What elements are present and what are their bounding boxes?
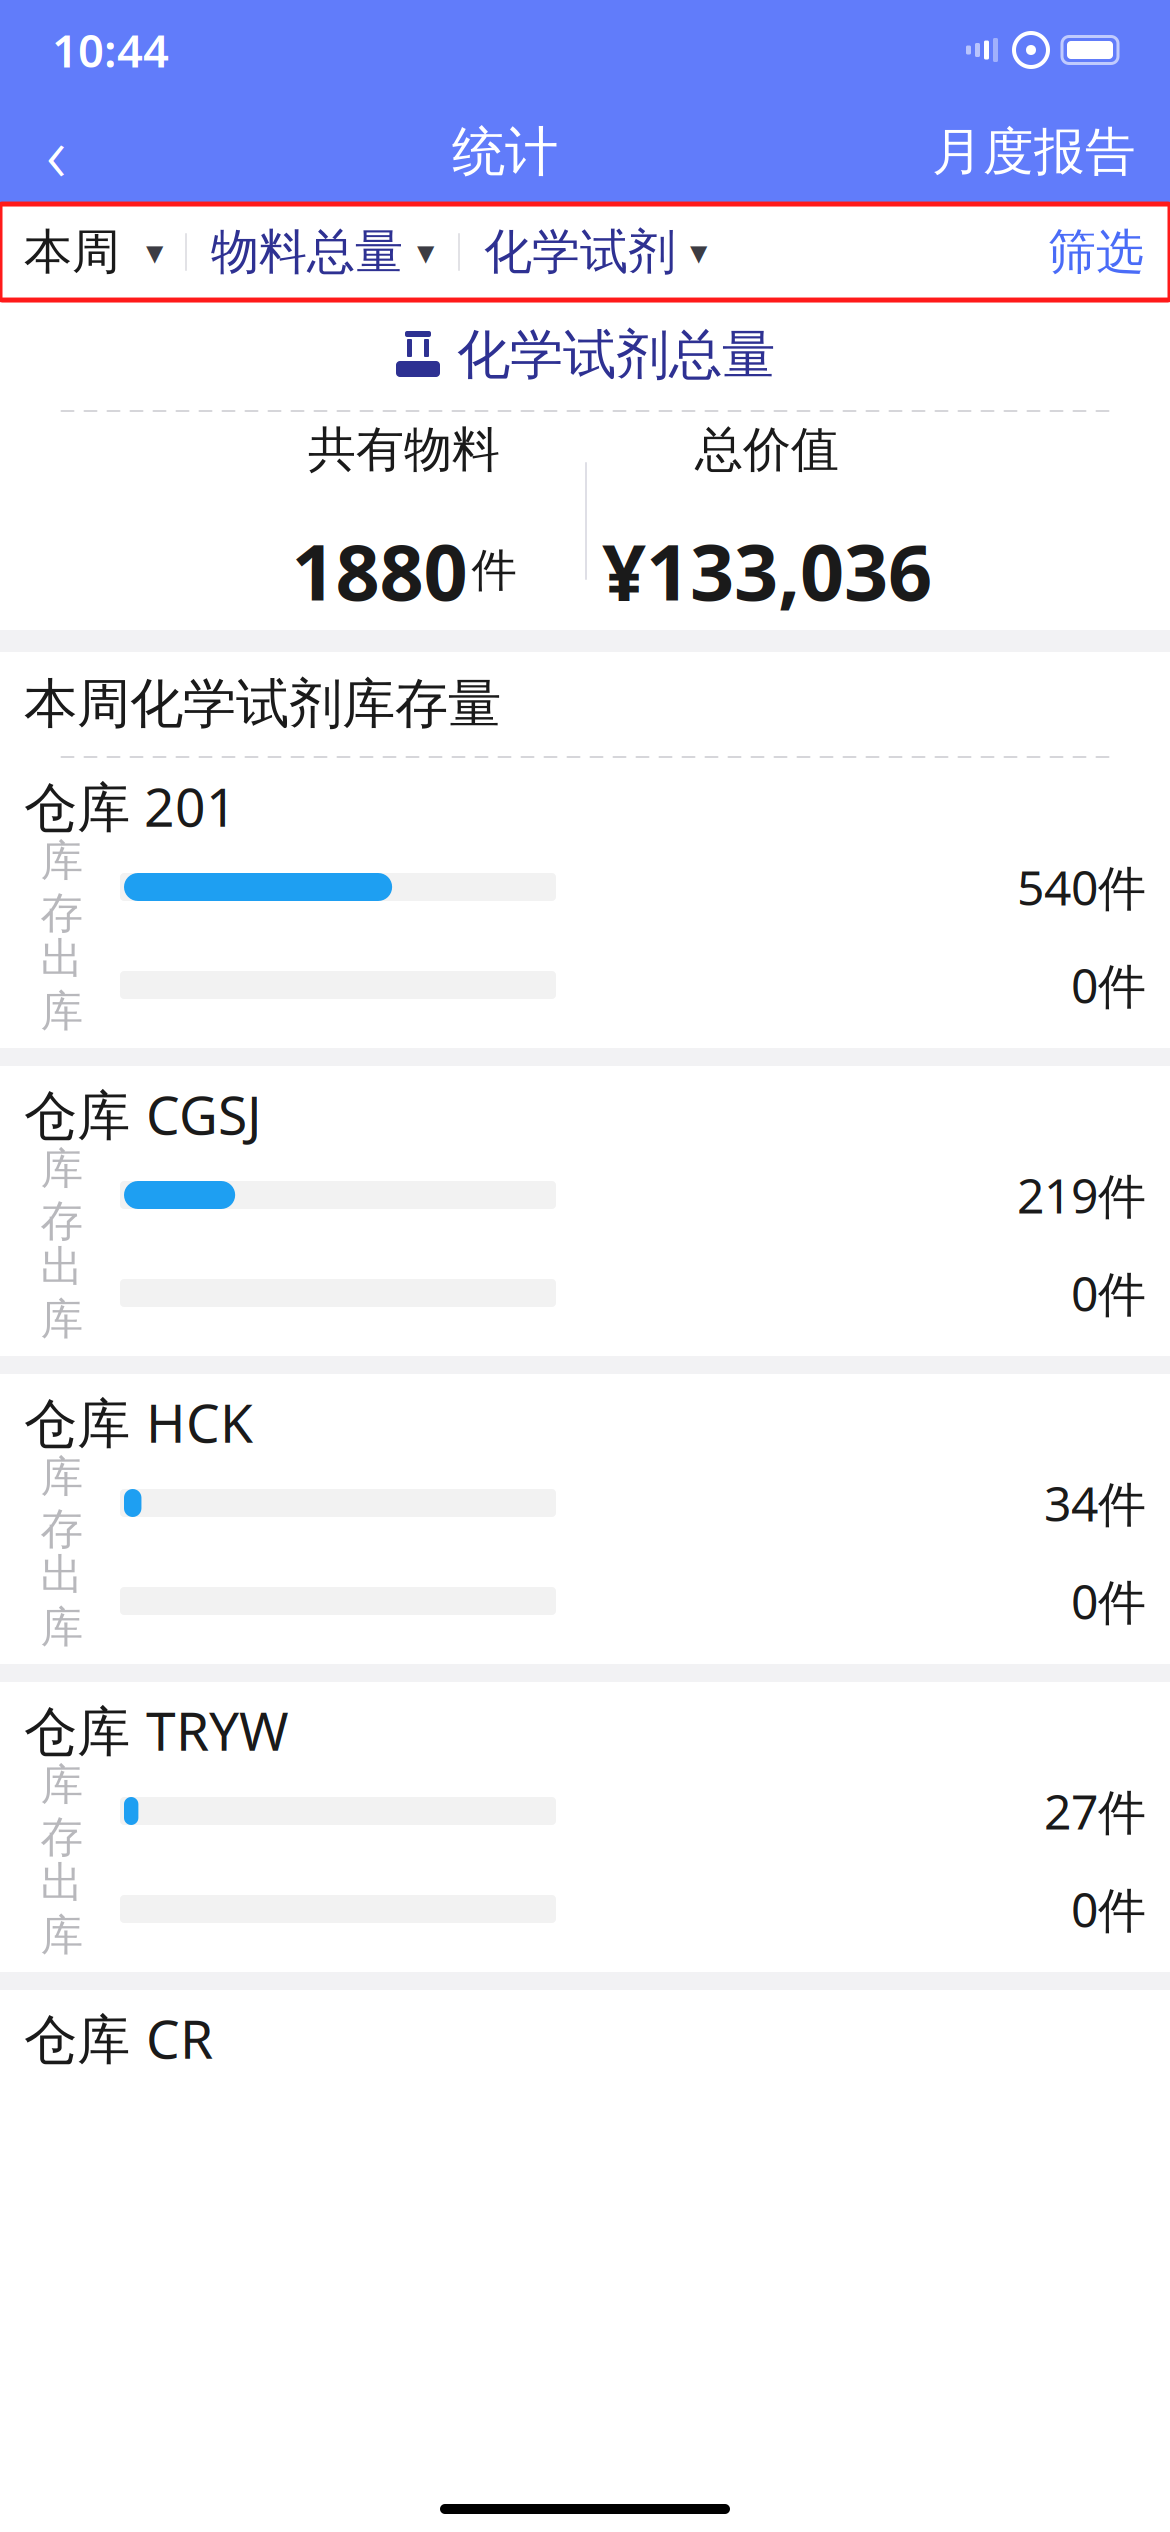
button[interactable]: 本周 bbox=[0, 206, 185, 298]
staticText: 仓库 201 bbox=[24, 771, 237, 841]
staticText: 仓库 HCK bbox=[24, 1387, 253, 1457]
staticText: 库存 bbox=[40, 1759, 83, 1863]
staticText: 化学试剂 bbox=[484, 222, 676, 281]
staticText: 27件 bbox=[1044, 1779, 1146, 1843]
button[interactable]: 筛选 bbox=[1022, 206, 1170, 298]
staticText: ¥133,036 bbox=[602, 519, 932, 622]
staticText: ▾ bbox=[690, 232, 707, 272]
button[interactable]: 仓库 HCK bbox=[0, 1374, 1170, 1664]
staticText: 本周 bbox=[24, 222, 120, 281]
staticText: 库存 bbox=[40, 835, 83, 939]
staticText: 0件 bbox=[1071, 1261, 1146, 1325]
staticText: 0件 bbox=[1071, 1877, 1146, 1941]
staticText: 筛选 bbox=[1048, 222, 1144, 281]
button[interactable]: 化学试剂 bbox=[460, 206, 731, 298]
staticText: 总价值 bbox=[695, 420, 839, 479]
staticText: 库存 bbox=[40, 1451, 83, 1555]
staticText: 件 bbox=[471, 543, 516, 598]
staticText: 1880 bbox=[291, 519, 467, 622]
staticText: 0件 bbox=[1071, 1569, 1146, 1633]
button[interactable]: 月度报告 bbox=[908, 108, 1160, 196]
button[interactable]: 物料总量 bbox=[187, 206, 458, 298]
staticText: 出库 bbox=[40, 1549, 83, 1653]
staticText: 统计 bbox=[452, 119, 558, 185]
button[interactable]: 仓库 TRYW bbox=[0, 1682, 1170, 1972]
staticText: ‹ bbox=[46, 101, 66, 203]
staticText: 34件 bbox=[1044, 1471, 1146, 1535]
staticText: 0件 bbox=[1071, 953, 1146, 1017]
staticText: 本周化学试剂库存量 bbox=[24, 671, 501, 737]
staticText: 库存 bbox=[40, 1143, 83, 1247]
staticText: 219件 bbox=[1017, 1163, 1146, 1227]
staticText: 10:44 bbox=[52, 20, 169, 80]
staticText: 仓库 CR bbox=[24, 2003, 213, 2073]
staticText: 出库 bbox=[40, 1241, 83, 1345]
staticText: 仓库 TRYW bbox=[24, 1695, 289, 1765]
staticText: 出库 bbox=[40, 1857, 83, 1961]
staticText: ▾ bbox=[146, 232, 163, 272]
staticText: 月度报告 bbox=[932, 121, 1136, 183]
staticText: ▾ bbox=[417, 232, 434, 272]
staticText: 化学试剂总量 bbox=[457, 322, 775, 388]
staticText: 共有物料 bbox=[308, 420, 500, 479]
staticText: 出库 bbox=[40, 933, 83, 1037]
staticText: 仓库 CGSJ bbox=[24, 1079, 262, 1149]
button[interactable]: 返回 bbox=[10, 108, 102, 196]
staticText: 540件 bbox=[1017, 855, 1146, 919]
staticText: 物料总量 bbox=[211, 222, 403, 281]
button[interactable]: 仓库 CGSJ bbox=[0, 1066, 1170, 1356]
button[interactable]: 仓库 201 bbox=[0, 758, 1170, 1048]
